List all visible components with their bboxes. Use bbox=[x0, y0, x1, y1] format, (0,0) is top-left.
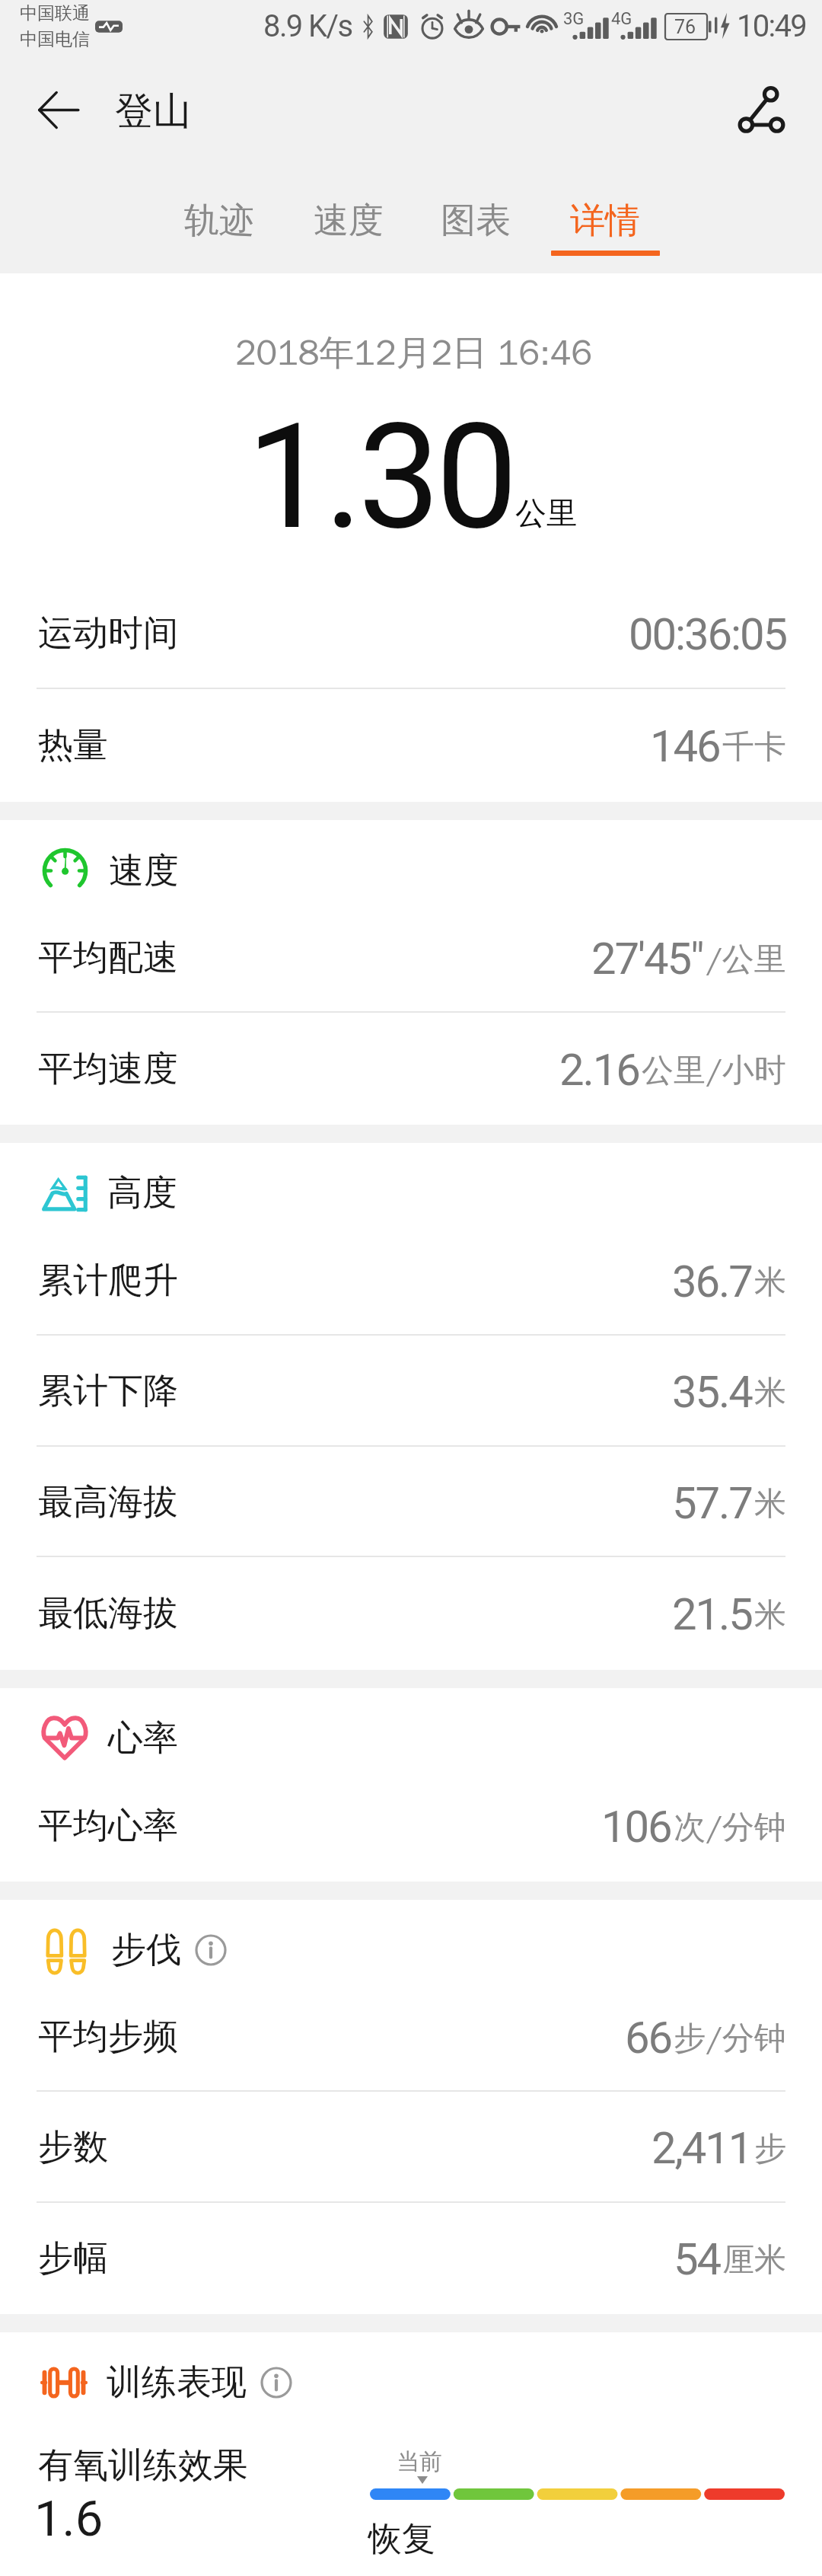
staticText: 步伐 bbox=[111, 1928, 181, 1972]
button[interactable]: 轨迹 bbox=[157, 174, 282, 273]
staticText: 心率 bbox=[108, 1716, 178, 1760]
button[interactable]: 平均心率 bbox=[0, 1770, 822, 1882]
staticText: 详情 bbox=[570, 199, 640, 243]
button[interactable]: 累计爬升 bbox=[0, 1225, 822, 1336]
staticText: 米 bbox=[754, 1595, 786, 1636]
staticText: 恢复 bbox=[368, 2518, 435, 2560]
staticText: 106 bbox=[601, 1801, 671, 1853]
staticText: 2.16 bbox=[559, 1044, 639, 1096]
button[interactable]: 步数 bbox=[0, 2092, 822, 2203]
staticText: 平均速度 bbox=[38, 1047, 178, 1091]
staticText: 1.6 bbox=[34, 2490, 104, 2548]
staticText: 有氧训练效果 bbox=[38, 2444, 248, 2488]
staticText: 36.7 bbox=[672, 1256, 752, 1307]
staticText: 步/分钟 bbox=[674, 2019, 786, 2059]
staticText: 1.30 bbox=[247, 391, 514, 563]
button[interactable]: Back bbox=[16, 68, 100, 152]
button[interactable]: 最高海拔 bbox=[0, 1447, 822, 1557]
staticText: 登山 bbox=[115, 88, 191, 136]
staticText: 累计下降 bbox=[38, 1369, 178, 1413]
staticText: 米 bbox=[754, 1262, 786, 1303]
button[interactable]: 累计下降 bbox=[0, 1336, 822, 1447]
staticText: /公里 bbox=[706, 940, 786, 980]
staticText: 66 bbox=[625, 2012, 671, 2064]
button[interactable]: Info bbox=[260, 2367, 292, 2399]
button[interactable]: 平均速度 bbox=[0, 1013, 822, 1125]
staticText: 步数 bbox=[38, 2125, 108, 2169]
staticText: 中国电信 bbox=[20, 28, 90, 50]
staticText: 57.7 bbox=[672, 1477, 752, 1529]
staticText: 21.5 bbox=[672, 1588, 752, 1640]
staticText: 厘米 bbox=[722, 2240, 786, 2281]
staticText: 当前 bbox=[397, 2447, 442, 2476]
staticText: 运动时间 bbox=[38, 611, 178, 656]
staticText: 公里 bbox=[515, 494, 578, 534]
button[interactable]: 运动时间 bbox=[0, 577, 822, 689]
staticText: 2018年12月2日 16:46 bbox=[235, 331, 592, 375]
button[interactable]: 详情 bbox=[543, 174, 667, 273]
staticText: 中国联通 bbox=[20, 2, 90, 24]
button[interactable]: 图表 bbox=[413, 174, 538, 273]
staticText: 平均配速 bbox=[38, 936, 178, 980]
staticText: 平均步频 bbox=[38, 2015, 178, 2059]
staticText: 54 bbox=[674, 2233, 720, 2285]
staticText: 累计爬升 bbox=[38, 1259, 178, 1303]
staticText: 27'45" bbox=[591, 933, 703, 985]
staticText: 8.9 K/s bbox=[263, 8, 352, 44]
staticText: 米 bbox=[754, 1484, 786, 1524]
staticText: 训练表现 bbox=[107, 2361, 247, 2405]
staticText: 公里/小时 bbox=[642, 1051, 786, 1091]
staticText: 米 bbox=[754, 1373, 786, 1413]
button[interactable]: 热量 bbox=[0, 689, 822, 802]
button[interactable]: 平均步频 bbox=[0, 1981, 822, 2092]
button[interactable]: 平均配速 bbox=[0, 903, 822, 1013]
staticText: 速度 bbox=[314, 199, 384, 243]
staticText: 千卡 bbox=[722, 727, 786, 768]
staticText: 次/分钟 bbox=[674, 1808, 786, 1848]
staticText: 最低海拔 bbox=[38, 1591, 178, 1636]
button[interactable]: 速度 bbox=[286, 174, 411, 273]
button[interactable]: Info bbox=[195, 1934, 227, 1966]
button[interactable]: 最低海拔 bbox=[0, 1557, 822, 1670]
staticText: 速度 bbox=[109, 849, 179, 893]
staticText: 3G bbox=[563, 9, 585, 29]
staticText: 平均心率 bbox=[38, 1804, 178, 1848]
button[interactable]: 步幅 bbox=[0, 2203, 822, 2314]
staticText: 步 bbox=[754, 2129, 786, 2169]
staticText: 轨迹 bbox=[184, 199, 254, 243]
staticText: 步幅 bbox=[38, 2236, 108, 2281]
staticText: 最高海拔 bbox=[38, 1480, 178, 1524]
staticText: 00:36:05 bbox=[629, 608, 786, 660]
staticText: 146 bbox=[650, 720, 720, 772]
staticText: 4G bbox=[611, 9, 632, 29]
staticText: 图表 bbox=[441, 199, 511, 243]
staticText: 高度 bbox=[107, 1171, 177, 1215]
staticText: 10:49 bbox=[737, 8, 807, 44]
staticText: 2,411 bbox=[652, 2122, 752, 2174]
staticText: 35.4 bbox=[672, 1366, 752, 1418]
staticText: 热量 bbox=[38, 723, 108, 768]
staticText: 76 bbox=[674, 16, 696, 38]
button[interactable]: Share bbox=[719, 68, 803, 152]
